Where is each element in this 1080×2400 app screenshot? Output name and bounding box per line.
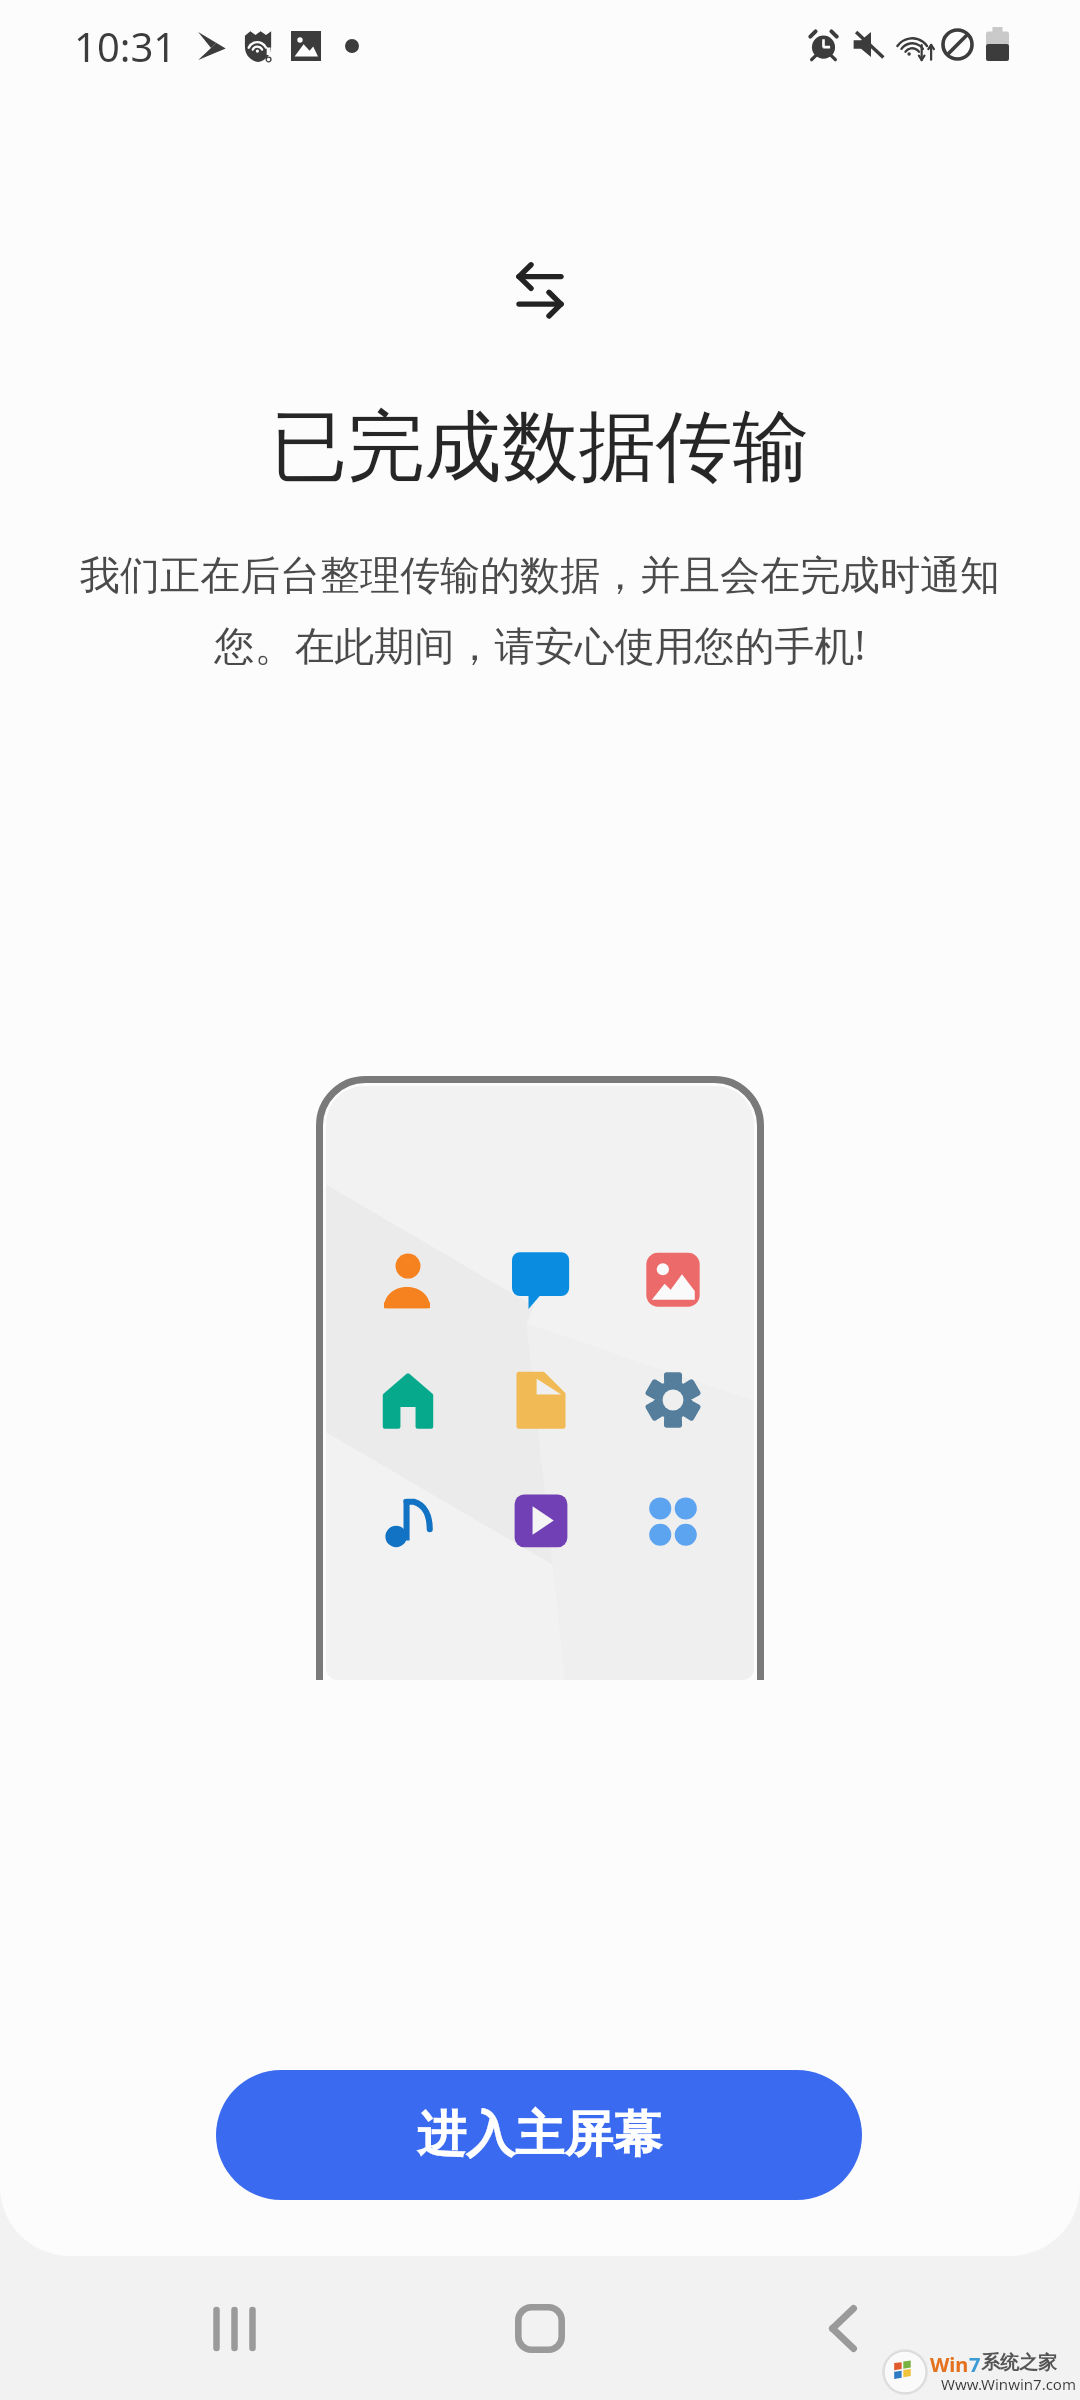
button[interactable]: Home [500, 2292, 580, 2364]
staticText: 7 [969, 2351, 981, 2378]
staticText: 进入主屏幕 [417, 2104, 662, 2166]
staticText: 已完成数据传输 [0, 399, 1080, 496]
staticText: 系统之家 [981, 2351, 1057, 2375]
button[interactable]: Back [812, 2292, 874, 2364]
button[interactable]: Recent apps [200, 2294, 278, 2364]
staticText: 10:31 [74, 19, 177, 73]
staticText: 我们正在后台整理传输的数据，并且会在完成时通知您。在此期间，请安心使用您的手机! [70, 550, 1010, 672]
staticText: Win [930, 2351, 969, 2378]
staticText: Www.Winwin7.com [941, 2374, 1076, 2394]
button[interactable]: 进入主屏幕 [216, 2070, 862, 2200]
